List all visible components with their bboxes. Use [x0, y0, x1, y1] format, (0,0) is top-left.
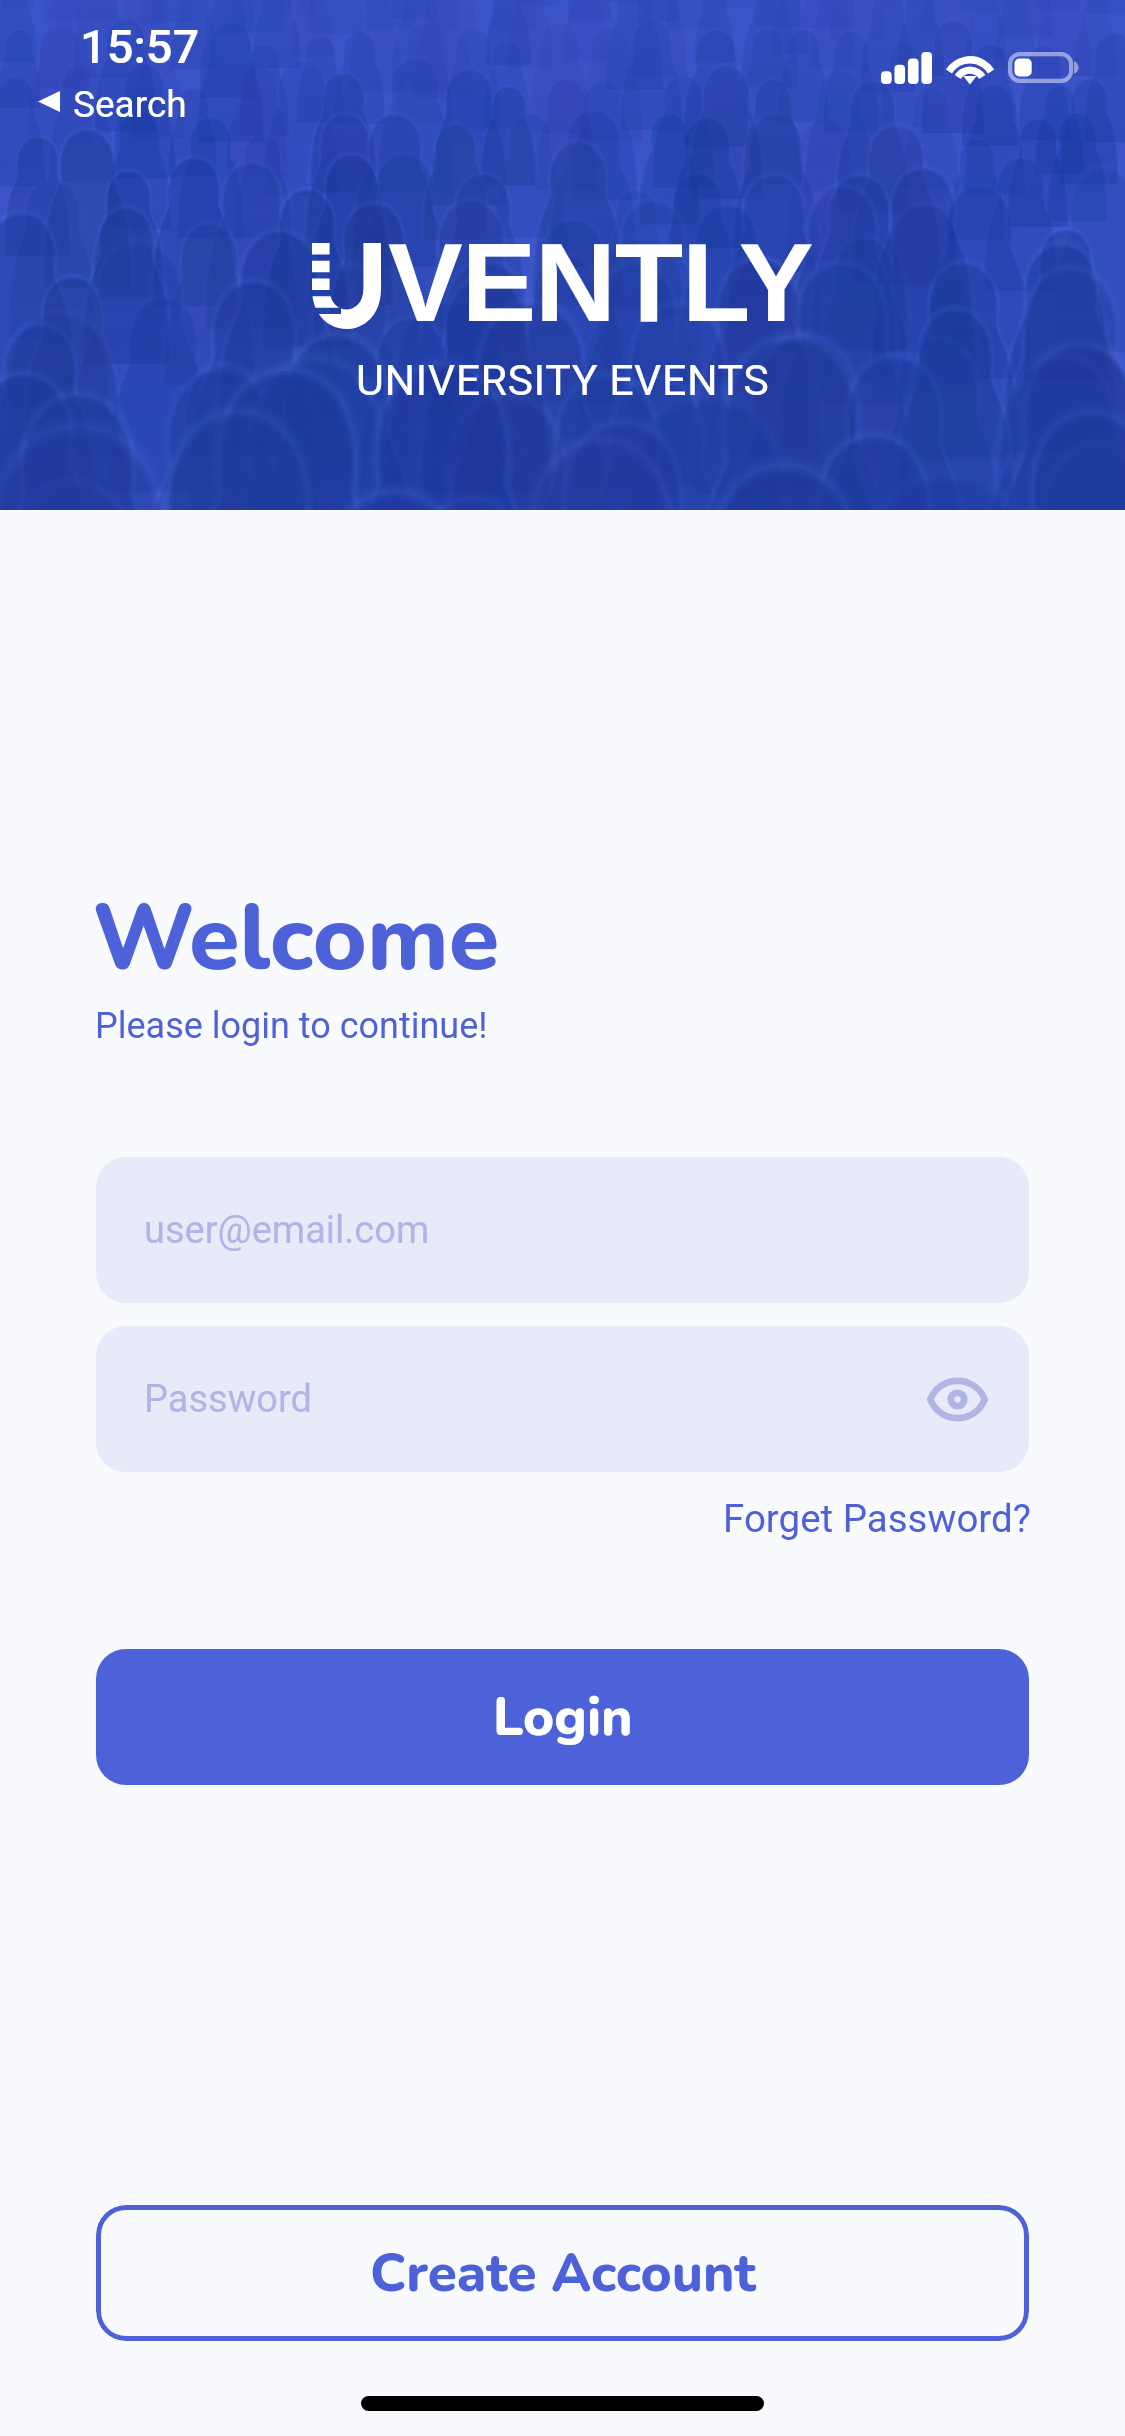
button[interactable]: Create Account: [96, 2205, 1029, 2341]
staticText: Welcome: [92, 876, 500, 1001]
staticText: UNIVERSITY EVENTS: [356, 355, 770, 405]
button[interactable]: user@email.com: [96, 1157, 1029, 1303]
button[interactable]: Show password: [919, 1361, 995, 1437]
button[interactable]: Login: [96, 1649, 1029, 1785]
staticText: Login: [493, 1681, 633, 1753]
staticText: Create Account: [370, 2237, 756, 2309]
button[interactable]: Forget Password?: [723, 1496, 1031, 1541]
staticText: Please login to continue!: [95, 1005, 488, 1047]
button[interactable]: Password: [96, 1326, 1029, 1472]
staticText: VENTLY: [388, 220, 813, 345]
staticText: Search: [73, 83, 187, 126]
staticText: 15:57: [80, 19, 200, 74]
staticText: Forget Password?: [723, 1496, 1031, 1541]
staticText: user@email.com: [144, 1208, 430, 1253]
staticText: Password: [144, 1377, 312, 1422]
